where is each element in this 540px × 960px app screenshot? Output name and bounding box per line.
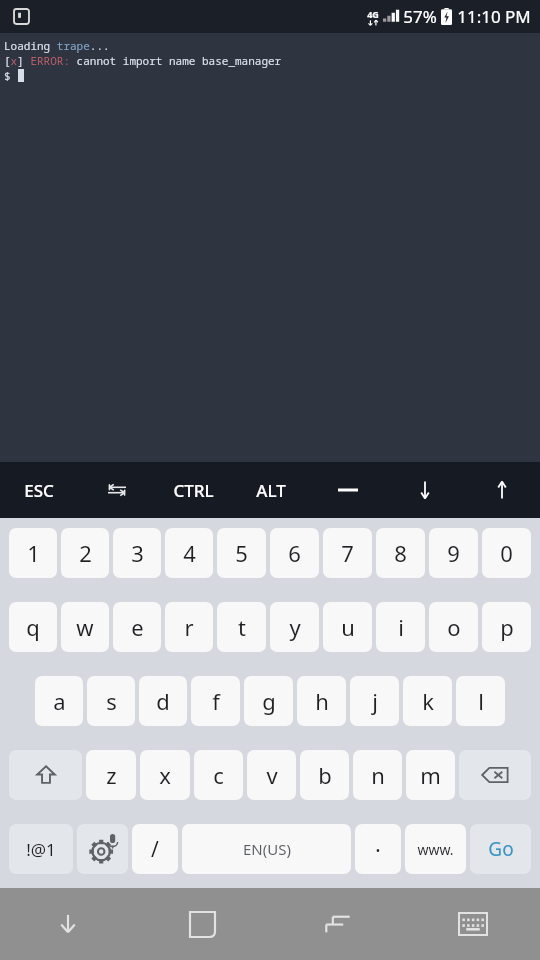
staticText: d (156, 686, 170, 716)
button[interactable]: Go (470, 824, 531, 874)
button[interactable]: CTRL (155, 462, 232, 518)
staticText: ESC (24, 479, 54, 502)
button[interactable]: 9 (429, 528, 478, 578)
button[interactable]: m (406, 750, 455, 800)
button[interactable]: c (194, 750, 243, 800)
staticText: !@1 (26, 838, 56, 861)
button[interactable]: i (376, 602, 425, 652)
button[interactable]: 6 (270, 528, 319, 578)
button[interactable]: Hide keyboard (0, 888, 135, 960)
staticText: 1 (27, 538, 40, 568)
button[interactable]: s (87, 676, 135, 726)
staticText: 8 (394, 538, 407, 568)
staticText: 7 (341, 538, 354, 568)
staticText: 3 (131, 538, 144, 568)
button[interactable]: 1 (9, 528, 57, 578)
staticText: f (212, 686, 220, 716)
button[interactable]: Recents (270, 888, 405, 960)
button[interactable]: Backspace (459, 750, 531, 800)
button[interactable]: 0 (482, 528, 531, 578)
staticText: v (266, 760, 278, 790)
button[interactable]: o (429, 602, 478, 652)
button[interactable]: Minus (309, 462, 386, 518)
staticText: [x] ERROR: cannot import name base_manag… (4, 53, 282, 68)
button[interactable]: l (456, 676, 505, 726)
button[interactable]: v (247, 750, 296, 800)
staticText: 0 (500, 538, 513, 568)
staticText: c (213, 760, 224, 790)
staticText: x (159, 760, 171, 790)
staticText: u (341, 612, 355, 642)
button[interactable]: Tab (78, 462, 155, 518)
button[interactable]: e (113, 602, 161, 652)
staticText: h (315, 686, 329, 716)
button[interactable]: 4 (165, 528, 213, 578)
button[interactable]: a (35, 676, 83, 726)
button[interactable]: 2 (61, 528, 109, 578)
button[interactable]: k (403, 676, 452, 726)
button[interactable]: Home (135, 888, 270, 960)
staticText: $ (4, 68, 18, 83)
button[interactable]: d (139, 676, 187, 726)
staticText: 4G (367, 8, 379, 20)
button[interactable]: b (300, 750, 349, 800)
staticText: o (447, 612, 461, 642)
button[interactable]: f (191, 676, 240, 726)
button[interactable]: r (165, 602, 213, 652)
button[interactable]: · (355, 824, 401, 874)
button[interactable]: ALT (232, 462, 309, 518)
staticText: q (26, 612, 40, 642)
staticText: 5 (235, 538, 248, 568)
button[interactable]: 8 (376, 528, 425, 578)
staticText: k (422, 686, 434, 716)
button[interactable]: h (297, 676, 346, 726)
button[interactable]: n (353, 750, 402, 800)
staticText: ALT (256, 479, 286, 502)
button[interactable]: Arrow down (386, 462, 463, 518)
staticText: z (106, 760, 117, 790)
button[interactable]: u (323, 602, 372, 652)
button[interactable]: www. (405, 824, 466, 874)
staticText: 11:10 PM (457, 5, 531, 28)
button[interactable]: !@1 (9, 824, 73, 874)
staticText: Loading trape... (4, 38, 110, 53)
button[interactable]: 5 (217, 528, 266, 578)
button[interactable]: Settings (77, 824, 128, 874)
button[interactable]: x (140, 750, 190, 800)
staticText: a (53, 686, 66, 716)
staticText: / (151, 835, 159, 864)
button[interactable]: y (270, 602, 319, 652)
button[interactable]: t (217, 602, 266, 652)
staticText: · (375, 834, 381, 864)
button[interactable]: j (350, 676, 399, 726)
button[interactable]: Switch keyboard (405, 888, 540, 960)
staticText: j (372, 686, 378, 716)
staticText: www. (417, 840, 454, 859)
staticText: 6 (288, 538, 301, 568)
staticText: r (184, 612, 194, 642)
button[interactable]: Arrow up (463, 462, 540, 518)
staticText: CTRL (173, 479, 214, 502)
button[interactable]: p (482, 602, 531, 652)
button[interactable]: / (132, 824, 178, 874)
staticText: 4 (183, 538, 196, 568)
staticText: EN(US) (243, 839, 291, 859)
staticText: 57% (403, 5, 437, 28)
button[interactable]: z (86, 750, 136, 800)
staticText: e (131, 612, 144, 642)
staticText: s (106, 686, 117, 716)
button[interactable]: 7 (323, 528, 372, 578)
button[interactable]: q (9, 602, 57, 652)
staticText: y (289, 612, 301, 642)
button[interactable]: EN(US) (182, 824, 351, 874)
staticText: Go (488, 836, 514, 862)
button[interactable]: w (61, 602, 109, 652)
staticText: i (398, 612, 404, 642)
staticText: w (76, 612, 94, 642)
button[interactable]: 3 (113, 528, 161, 578)
button[interactable]: ESC (0, 462, 78, 518)
button[interactable]: Shift (9, 750, 82, 800)
button[interactable]: g (244, 676, 293, 726)
staticText: n (371, 760, 385, 790)
staticText: 9 (447, 538, 460, 568)
